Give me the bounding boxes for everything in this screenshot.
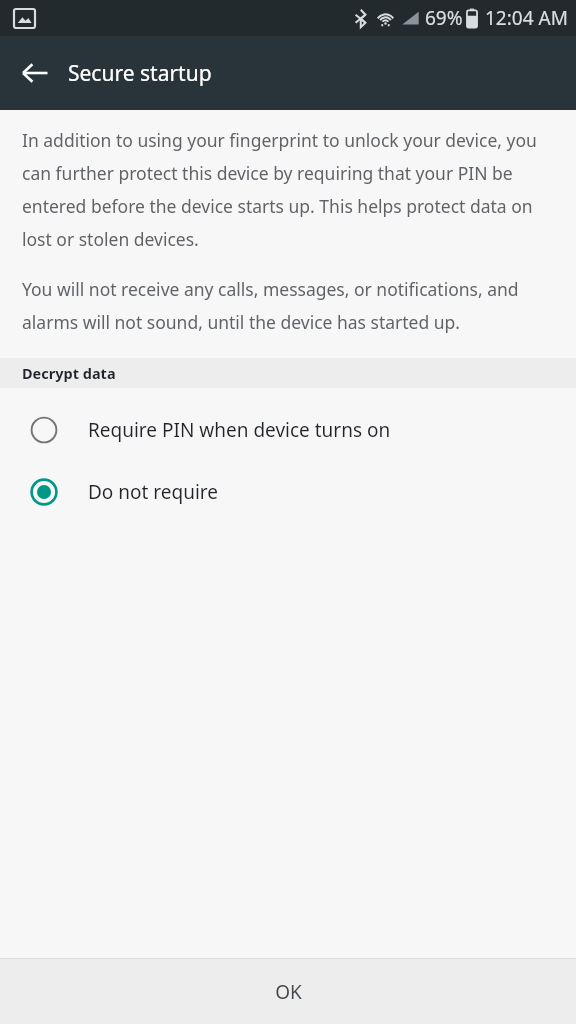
button[interactable]: OK [0, 959, 576, 1024]
button[interactable]: Do not require [0, 468, 576, 516]
staticText: 12:04 AM [485, 5, 568, 31]
staticText: Secure startup [68, 59, 212, 88]
staticText: 69% [425, 5, 463, 31]
button[interactable]: Require PIN when device turns on [0, 406, 576, 454]
button[interactable]: Back [12, 50, 58, 96]
staticText: You will not receive any calls, messages… [22, 277, 554, 334]
staticText: Require PIN when device turns on [88, 417, 391, 443]
staticText: Do not require [88, 479, 219, 505]
staticText: OK [275, 979, 302, 1005]
staticText: In addition to using your fingerprint to… [22, 128, 554, 251]
staticText: Decrypt data [22, 363, 116, 383]
